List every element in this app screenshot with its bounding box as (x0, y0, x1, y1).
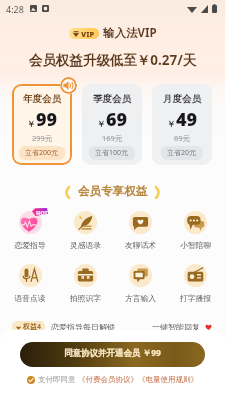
button[interactable]: 年度会员 (12, 84, 72, 165)
staticText: 打字播报 (168, 293, 223, 303)
button[interactable]: 打字播报 (168, 264, 223, 303)
staticText: 49 (176, 107, 198, 132)
staticText: 169元 (102, 133, 123, 143)
button[interactable]: 小智陪聊 (168, 211, 223, 250)
staticText: 季度会员 (93, 93, 131, 105)
button[interactable]: Sound on (60, 77, 77, 94)
staticText: 拍照识字 (58, 293, 113, 303)
staticText: 输入法VIP (103, 25, 157, 41)
button[interactable]: 拍照识字 (58, 264, 113, 303)
button[interactable]: HOT (2, 211, 58, 250)
button[interactable]: 友聊话术 (113, 211, 168, 250)
button[interactable]: 方言输入 (113, 264, 168, 303)
staticText: 恋爱指导每日解锁 (51, 322, 115, 332)
button[interactable]: 季度会员 (82, 84, 142, 165)
staticText: ￥ (97, 119, 106, 130)
staticText: 69元 (174, 133, 191, 143)
staticText: 99 (36, 107, 58, 132)
button[interactable]: 灵感语录 (58, 211, 113, 250)
staticText: 小智陪聊 (168, 240, 223, 250)
staticText: 会员专享权益 (78, 184, 147, 198)
staticText: 4:28 (6, 3, 24, 15)
staticText: HOT (36, 209, 48, 216)
staticText: 立省200元 (25, 148, 59, 158)
staticText: 月度会员 (163, 93, 201, 105)
staticText: 友聊话术 (113, 240, 168, 250)
staticText: 恋爱指导 (2, 240, 58, 250)
staticText: VIP (81, 29, 95, 39)
staticText: 权益4 (23, 322, 42, 332)
button[interactable]: 《付费会员协议》《电量使用规则》 (78, 375, 198, 384)
staticText: 支付即同意 (38, 375, 76, 384)
staticText: 一键智能回复 (152, 322, 200, 332)
staticText: 69 (106, 107, 128, 132)
staticText: 语音点读 (2, 293, 58, 303)
staticText: 灵感语录 (58, 240, 113, 250)
staticText: 299元 (32, 133, 53, 143)
button[interactable]: 语音点读 (2, 264, 58, 303)
staticText: 年度会员 (23, 93, 61, 105)
staticText: ￥ (27, 119, 36, 130)
button[interactable]: 月度会员 (152, 84, 212, 165)
staticText: 会员权益升级低至￥0.27/天 (0, 51, 225, 69)
staticText: 立省100元 (95, 148, 129, 158)
staticText: 方言输入 (113, 293, 168, 303)
staticText: 同意协议并开通会员 ￥99 (64, 347, 161, 359)
button[interactable]: 同意协议并开通会员 ￥99 (20, 342, 205, 367)
staticText: ￥ (167, 119, 176, 130)
staticText: 立省20元 (167, 148, 197, 158)
